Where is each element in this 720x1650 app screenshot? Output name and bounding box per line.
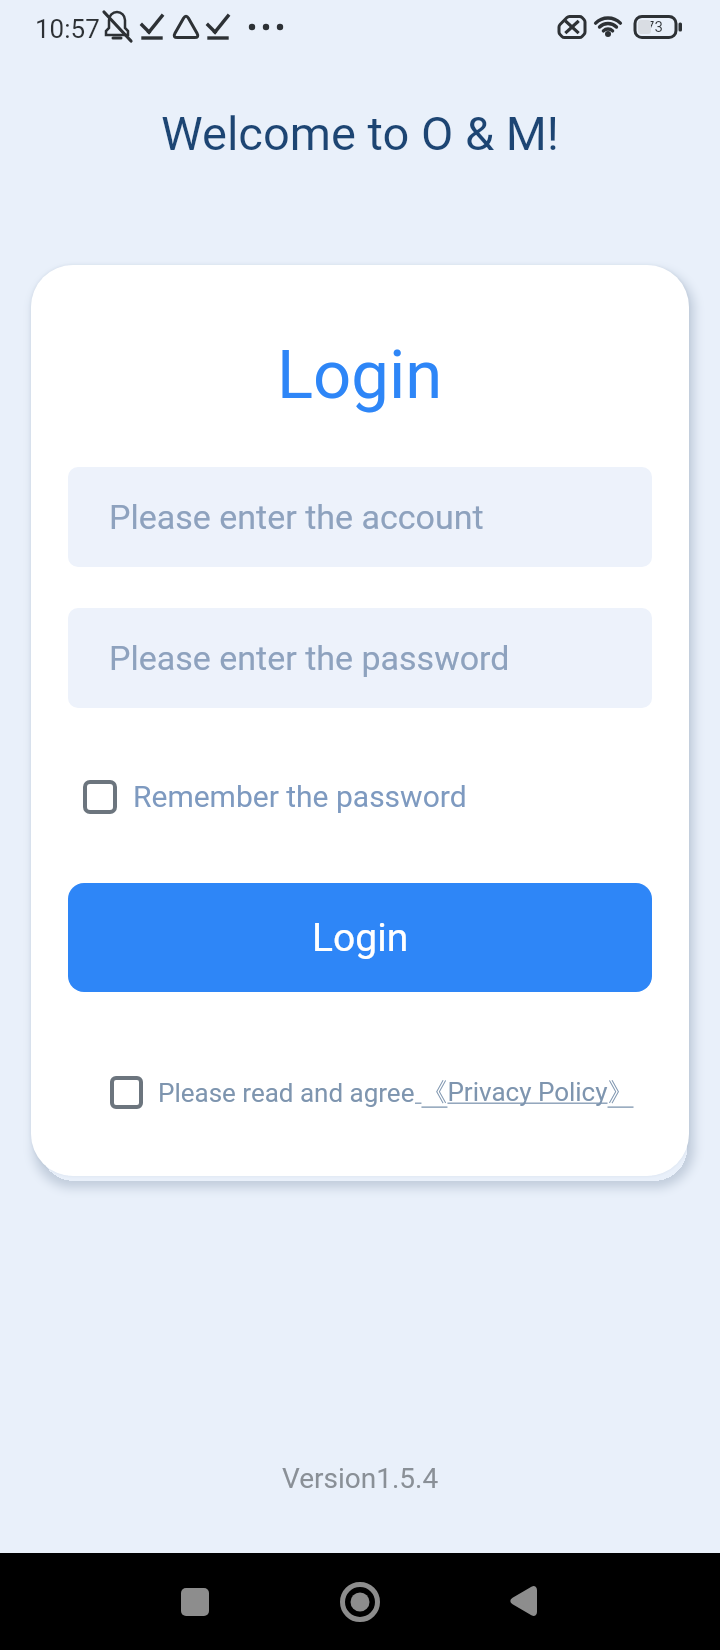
button[interactable]: Please enter the account <box>68 467 652 567</box>
button[interactable] <box>311 1553 408 1650</box>
staticText: 10:57 <box>35 14 100 44</box>
button[interactable]: Please read and agree <box>110 1076 652 1109</box>
staticText: Please enter the password <box>109 638 510 678</box>
button[interactable]: Please enter the password <box>68 608 652 708</box>
staticText: Version1.5.4 <box>282 1462 439 1495</box>
staticText: 73 <box>646 18 663 36</box>
staticText: Login <box>312 915 409 961</box>
button[interactable] <box>474 1553 571 1650</box>
staticText: 《Privacy Policy》 <box>415 1076 640 1109</box>
staticText: Login <box>277 336 443 415</box>
button[interactable]: Login <box>68 883 652 992</box>
button[interactable]: Remember the password <box>83 779 467 814</box>
staticText: Please read and agree <box>158 1078 415 1108</box>
staticText: Welcome to O & M! <box>161 106 559 161</box>
button[interactable] <box>146 1553 243 1650</box>
staticText: Please enter the account <box>109 497 484 537</box>
staticText: Remember the password <box>133 779 467 814</box>
